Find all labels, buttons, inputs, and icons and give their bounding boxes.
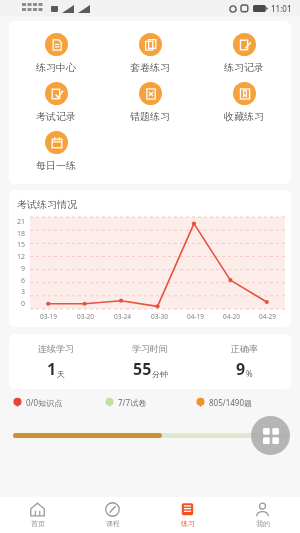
- staticText: 练习: [181, 519, 195, 528]
- button[interactable]: 套卷练习: [130, 29, 170, 78]
- staticText: 04-20: [223, 312, 240, 321]
- staticText: 03-24: [114, 312, 131, 321]
- staticText: 55: [133, 358, 152, 380]
- button[interactable]: 805/1490题: [196, 397, 287, 408]
- staticText: 考试记录: [36, 110, 76, 123]
- button[interactable]: More tools: [251, 416, 290, 455]
- staticText: 15: [17, 240, 26, 250]
- staticText: 04-29: [259, 312, 276, 321]
- staticText: 分钟: [152, 369, 168, 379]
- staticText: 练习记录: [224, 61, 264, 74]
- button[interactable]: 错题练习: [130, 78, 170, 127]
- staticText: 03-19: [40, 312, 57, 321]
- button[interactable]: 每日一练: [36, 127, 76, 176]
- staticText: 0: [21, 299, 26, 309]
- button[interactable]: 学习时间: [103, 343, 197, 380]
- button[interactable]: 正确率: [197, 343, 291, 380]
- staticText: 3: [21, 287, 26, 297]
- staticText: 9: [236, 358, 246, 380]
- staticText: 04-19: [187, 312, 204, 321]
- staticText: 练习中心: [36, 61, 76, 74]
- staticText: 0/0知识点: [26, 397, 63, 408]
- staticText: 天: [57, 369, 65, 379]
- staticText: 6: [21, 276, 26, 286]
- staticText: 每日一练: [36, 159, 76, 172]
- staticText: 9: [21, 264, 26, 274]
- staticText: 收藏练习: [224, 110, 264, 123]
- button[interactable]: 连续学习: [9, 343, 103, 380]
- staticText: 03-30: [151, 312, 168, 321]
- staticText: 连续学习: [38, 343, 74, 354]
- staticText: 错题练习: [130, 110, 170, 123]
- button[interactable]: 练习记录: [224, 29, 264, 78]
- button[interactable]: 首页: [0, 497, 75, 533]
- button[interactable]: 练习中心: [36, 29, 76, 78]
- staticText: 首页: [31, 519, 45, 528]
- staticText: 21: [17, 217, 26, 227]
- staticText: %: [246, 368, 253, 379]
- staticText: 考试练习情况: [17, 198, 77, 211]
- staticText: 我的: [256, 519, 270, 528]
- button[interactable]: 0/0知识点: [13, 397, 105, 408]
- staticText: 805/1490题: [209, 397, 253, 408]
- staticText: 11:01: [271, 3, 292, 14]
- staticText: 套卷练习: [130, 61, 170, 74]
- button[interactable]: 课程: [75, 497, 150, 533]
- button[interactable]: 收藏练习: [224, 78, 264, 127]
- staticText: 课程: [106, 519, 120, 528]
- button[interactable]: 练习: [150, 497, 225, 533]
- button[interactable]: 7/7试卷: [105, 397, 196, 408]
- staticText: 1: [47, 358, 57, 380]
- button[interactable]: 我的: [225, 497, 300, 533]
- staticText: 7/7试卷: [118, 397, 147, 408]
- staticText: 学习时间: [132, 343, 168, 354]
- button[interactable]: 考试记录: [36, 78, 76, 127]
- staticText: 18: [17, 229, 26, 239]
- staticText: 03-20: [77, 312, 94, 321]
- staticText: 正确率: [231, 343, 258, 354]
- staticText: 12: [17, 252, 26, 262]
